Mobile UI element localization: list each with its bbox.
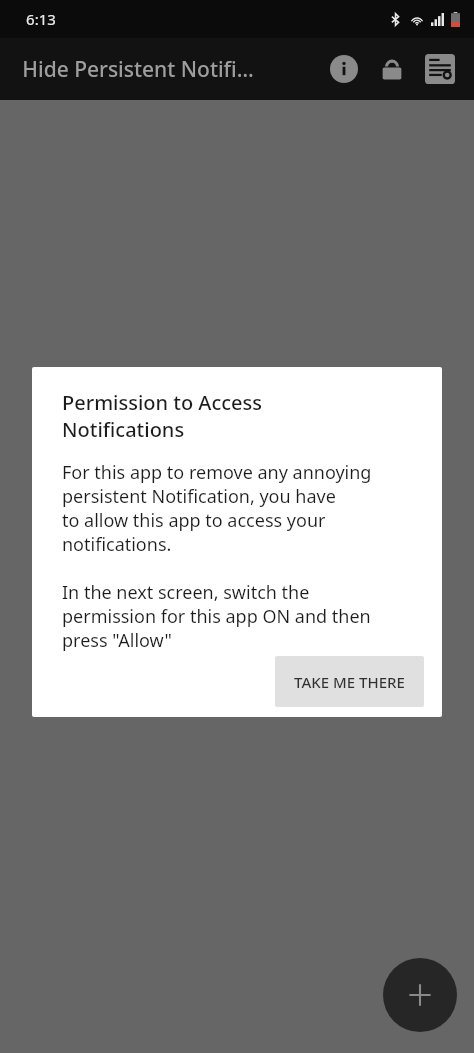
button[interactable]: TAKE ME THERE xyxy=(275,656,424,707)
staticText: Permission to Access Notifications xyxy=(62,389,263,443)
staticText: For this app to remove any annoying pers… xyxy=(62,460,372,556)
staticText: TAKE ME THERE xyxy=(294,672,405,692)
staticText: Hide Persistent Notifi… xyxy=(22,55,254,84)
button[interactable]: Notification list xyxy=(416,45,464,93)
button[interactable]: Info xyxy=(320,45,368,93)
button[interactable]: Add xyxy=(383,958,457,1032)
staticText: 6:13 xyxy=(26,9,56,29)
button[interactable]: Lock xyxy=(368,45,416,93)
staticText: In the next screen, switch the permissio… xyxy=(62,580,371,652)
